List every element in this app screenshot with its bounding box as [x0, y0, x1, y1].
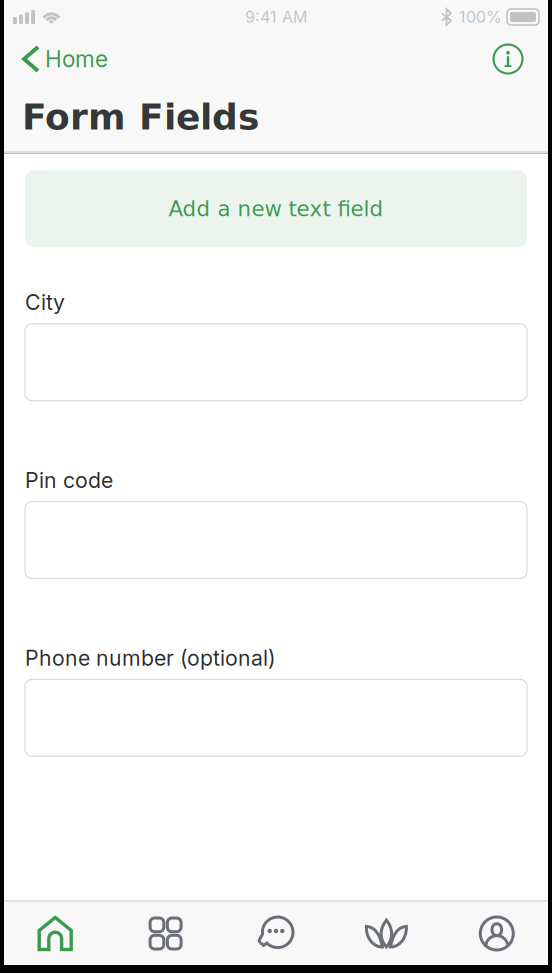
staticText: Home [45, 45, 108, 73]
button[interactable]: Messages [221, 901, 331, 965]
staticText: Form Fields [22, 96, 259, 138]
button[interactable]: Profile [442, 901, 552, 965]
button[interactable]: Add a new text field [25, 170, 527, 247]
staticText: 9:41 AM [245, 7, 307, 27]
button[interactable]: Home [4, 36, 122, 82]
staticText: 100% [459, 7, 502, 27]
button[interactable]: Apps [110, 901, 221, 965]
staticText: Phone number (optional) [25, 645, 276, 671]
button[interactable]: Information [485, 36, 548, 82]
staticText: Pin code [25, 467, 113, 493]
button[interactable]: Home [0, 901, 110, 965]
button[interactable]: Wellness [331, 901, 442, 965]
staticText: Add a new text field [168, 196, 383, 221]
staticText: City [25, 289, 65, 315]
